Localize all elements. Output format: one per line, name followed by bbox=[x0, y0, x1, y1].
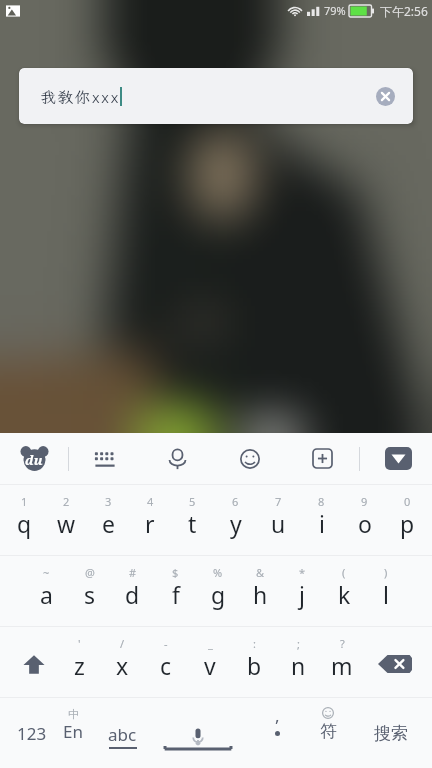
button[interactable]: - bbox=[144, 627, 188, 697]
staticText: 3 bbox=[105, 494, 112, 509]
button[interactable]: # bbox=[111, 556, 154, 626]
button[interactable]: Shift bbox=[0, 627, 58, 697]
staticText: ) bbox=[384, 565, 388, 580]
button[interactable]: ( bbox=[323, 556, 365, 626]
staticText: En bbox=[63, 720, 83, 743]
staticText: ' bbox=[78, 636, 81, 651]
staticText: w bbox=[57, 508, 76, 539]
button[interactable]: 123 bbox=[2, 698, 62, 768]
button[interactable]: ? bbox=[320, 627, 364, 697]
staticText: d bbox=[125, 579, 140, 610]
button[interactable]: 符 bbox=[304, 698, 352, 768]
staticText: k bbox=[338, 579, 351, 610]
staticText: # bbox=[129, 565, 137, 580]
staticText: _ bbox=[208, 636, 213, 651]
staticText: & bbox=[256, 565, 265, 580]
button[interactable]: Voice input bbox=[141, 433, 213, 484]
staticText: z bbox=[74, 650, 85, 681]
staticText: $ bbox=[172, 565, 179, 580]
staticText: 1 bbox=[21, 494, 28, 509]
button[interactable]: / bbox=[101, 627, 144, 697]
button[interactable]: Emoji bbox=[213, 433, 286, 484]
staticText: m bbox=[331, 650, 353, 681]
button[interactable]: $ bbox=[154, 556, 197, 626]
staticText: ; bbox=[297, 636, 300, 651]
button[interactable]: 8 bbox=[300, 485, 343, 555]
staticText: 搜索 bbox=[374, 723, 408, 744]
staticText: 9 bbox=[361, 494, 368, 509]
staticText: i bbox=[319, 508, 325, 539]
button[interactable]: ' bbox=[58, 627, 101, 697]
staticText: 符 bbox=[320, 721, 337, 742]
button[interactable]: : bbox=[232, 627, 276, 697]
staticText: a bbox=[40, 579, 53, 610]
staticText: e bbox=[102, 508, 115, 539]
staticText: 79% bbox=[324, 3, 346, 18]
staticText: , bbox=[275, 704, 280, 727]
staticText: 中 bbox=[68, 707, 79, 721]
button[interactable]: % bbox=[197, 556, 239, 626]
button[interactable]: 0 bbox=[386, 485, 429, 555]
button[interactable]: & bbox=[239, 556, 281, 626]
staticText: h bbox=[253, 579, 268, 610]
button[interactable]: 9 bbox=[343, 485, 386, 555]
button[interactable]: 搜索 bbox=[352, 698, 430, 768]
staticText: s bbox=[84, 579, 96, 610]
button[interactable]: Hide keyboard bbox=[360, 433, 432, 484]
button[interactable]: 中 bbox=[51, 698, 95, 768]
staticText: 7 bbox=[275, 494, 282, 509]
staticText: v bbox=[204, 650, 216, 681]
button[interactable]: abc bbox=[97, 698, 147, 768]
button[interactable]: Baidu input method bbox=[0, 433, 68, 484]
staticText: g bbox=[211, 579, 226, 610]
staticText: o bbox=[358, 508, 372, 539]
staticText: * bbox=[299, 565, 306, 580]
button[interactable]: * bbox=[281, 556, 323, 626]
staticText: 8 bbox=[318, 494, 325, 509]
button[interactable]: 6 bbox=[214, 485, 257, 555]
button[interactable]: Clear text bbox=[376, 87, 395, 106]
staticText: 下午2:56 bbox=[380, 3, 428, 19]
staticText: t bbox=[188, 508, 197, 539]
staticText: 我教你xxx bbox=[40, 86, 120, 107]
button[interactable]: 3 bbox=[87, 485, 129, 555]
staticText: % bbox=[213, 565, 223, 580]
staticText: ( bbox=[342, 565, 346, 580]
button[interactable]: ) bbox=[365, 556, 407, 626]
button[interactable]: ; bbox=[276, 627, 320, 697]
staticText: r bbox=[145, 508, 155, 539]
button[interactable]: 2 bbox=[45, 485, 87, 555]
button[interactable]: Keyboard layout bbox=[69, 433, 141, 484]
staticText: b bbox=[247, 650, 262, 681]
staticText: p bbox=[400, 508, 415, 539]
button[interactable]: 5 bbox=[171, 485, 214, 555]
staticText: n bbox=[291, 650, 306, 681]
button[interactable]: 我教你xxx bbox=[19, 68, 413, 124]
staticText: 123 bbox=[17, 722, 47, 745]
button[interactable]: , bbox=[253, 698, 301, 768]
staticText: @ bbox=[85, 565, 95, 580]
button[interactable]: ~ bbox=[25, 556, 68, 626]
staticText: q bbox=[17, 508, 32, 539]
staticText: y bbox=[230, 508, 242, 539]
button[interactable]: 1 bbox=[3, 485, 45, 555]
staticText: du bbox=[25, 451, 43, 469]
button[interactable]: @ bbox=[68, 556, 111, 626]
button[interactable]: 4 bbox=[129, 485, 171, 555]
button[interactable]: 7 bbox=[257, 485, 300, 555]
button[interactable]: Space, voice input bbox=[143, 698, 253, 768]
staticText: x bbox=[116, 650, 129, 681]
staticText: 5 bbox=[189, 494, 196, 509]
button[interactable]: More options bbox=[286, 433, 359, 484]
button[interactable]: _ bbox=[188, 627, 232, 697]
staticText: ~ bbox=[43, 565, 50, 580]
button[interactable]: Backspace bbox=[364, 627, 432, 697]
staticText: / bbox=[120, 636, 125, 651]
staticText: f bbox=[172, 579, 180, 610]
staticText: u bbox=[271, 508, 286, 539]
staticText: - bbox=[164, 636, 168, 651]
staticText: j bbox=[299, 579, 305, 610]
staticText: : bbox=[253, 636, 256, 651]
staticText: l bbox=[383, 579, 389, 610]
staticText: c bbox=[160, 650, 172, 681]
